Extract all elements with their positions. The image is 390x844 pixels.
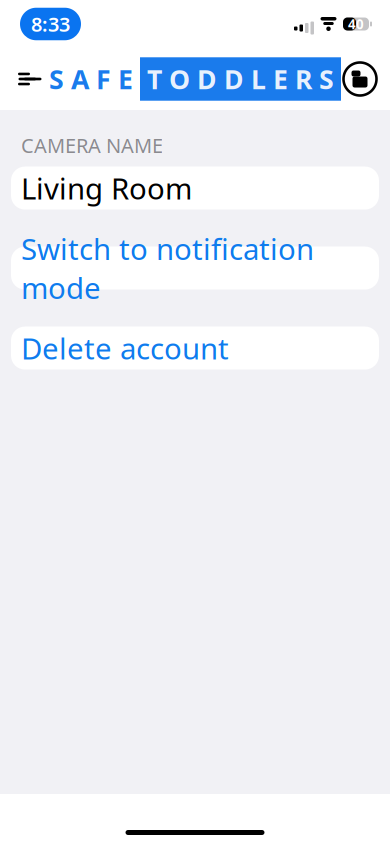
button[interactable]: Switch to notification mode [0,247,390,290]
staticText: 40 [348,15,364,33]
staticText: CAMERA NAME [21,132,163,159]
button[interactable]: Delete account [0,327,390,370]
staticText: Delete account [21,329,229,368]
staticText: Living Room [21,169,192,208]
staticText: 8:33 [31,11,70,37]
button[interactable]: Back [8,57,52,101]
staticText: S A F E [49,61,133,97]
button[interactable]: Documents [338,57,382,101]
staticText: T O D D L E R S [147,61,334,97]
staticText: Switch to notification mode [21,229,314,307]
